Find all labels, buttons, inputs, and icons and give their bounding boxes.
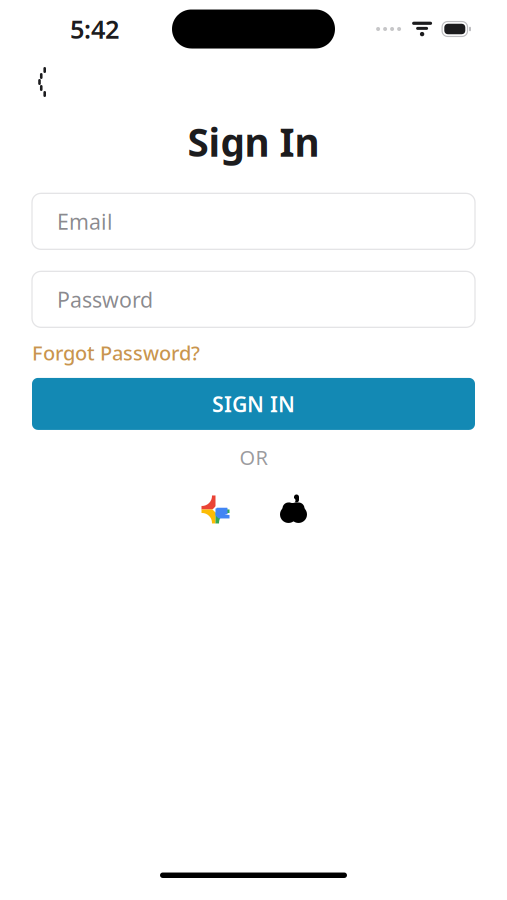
button[interactable]: Forgot Password? (32, 339, 200, 366)
button[interactable]: Sign in with Google (196, 490, 234, 528)
staticText: Sign In (187, 116, 319, 167)
staticText: Email (57, 207, 113, 235)
button[interactable]: Password (0, 271, 507, 327)
button[interactable]: Email (0, 193, 507, 249)
button[interactable]: Back (16, 60, 62, 104)
staticText: OR (239, 444, 267, 470)
button[interactable]: Sign in with Apple (276, 490, 310, 528)
button[interactable]: SIGN IN (0, 378, 507, 430)
staticText: Forgot Password? (32, 339, 200, 366)
staticText: 5:42 (70, 12, 119, 46)
staticText: Password (57, 285, 153, 313)
staticText: SIGN IN (212, 390, 295, 418)
